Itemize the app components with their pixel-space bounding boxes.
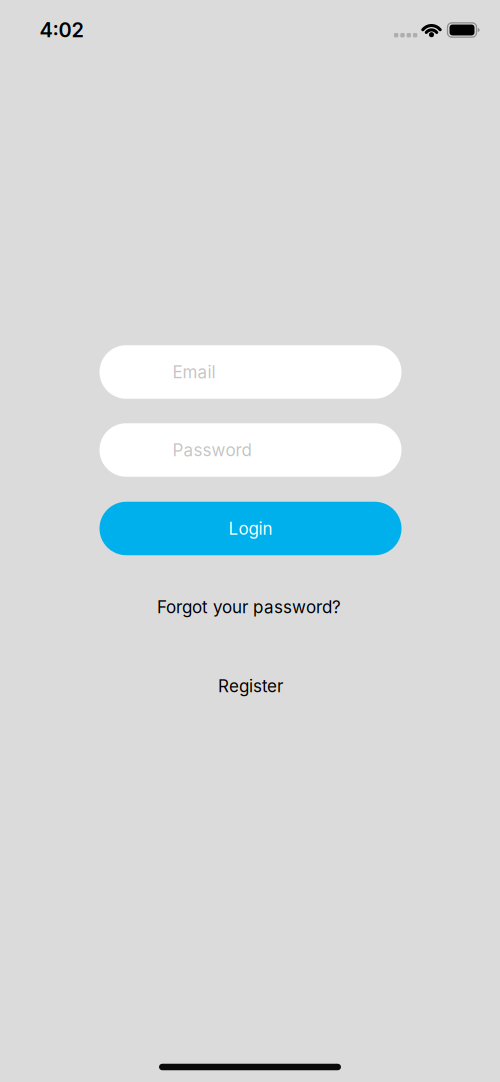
staticText: Forgot your password?: [157, 597, 341, 617]
staticText: Email: [172, 362, 215, 382]
staticText: Register: [218, 676, 283, 696]
staticText: Password: [172, 440, 251, 460]
staticText: 4:02: [39, 18, 83, 42]
staticText: Login: [228, 518, 272, 539]
